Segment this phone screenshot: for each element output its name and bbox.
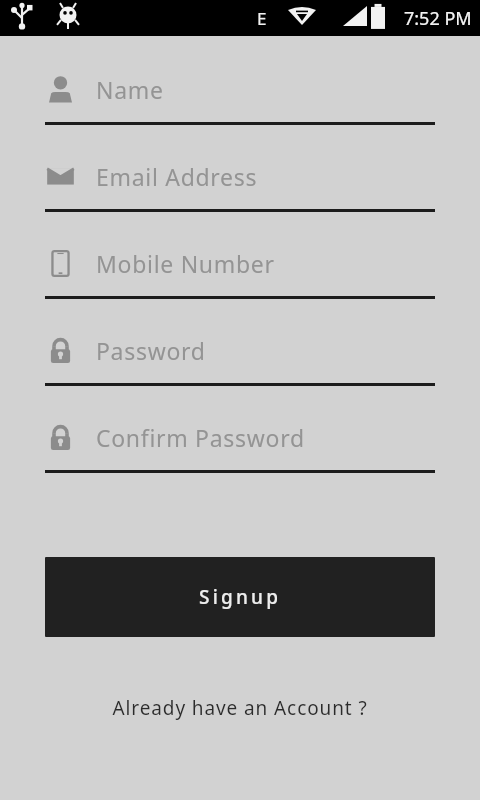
staticText: Name [96,74,164,105]
staticText: Already have an Account ? [112,695,368,721]
button[interactable]: Mobile Number [0,230,480,317]
button[interactable]: Password [0,317,480,404]
staticText: 7:52 PM [404,6,472,31]
staticText: Mobile Number [96,248,275,279]
staticText: Confirm Password [96,422,305,453]
button[interactable]: Signup [45,557,435,637]
button[interactable]: Already have an Account ? [0,695,480,721]
staticText: Password [96,335,206,366]
staticText: E [257,7,267,30]
button[interactable]: Name [0,56,480,143]
staticText: Signup [199,584,282,610]
button[interactable]: Confirm Password [0,404,480,491]
staticText: Email Address [96,161,258,192]
button[interactable]: Email Address [0,143,480,230]
